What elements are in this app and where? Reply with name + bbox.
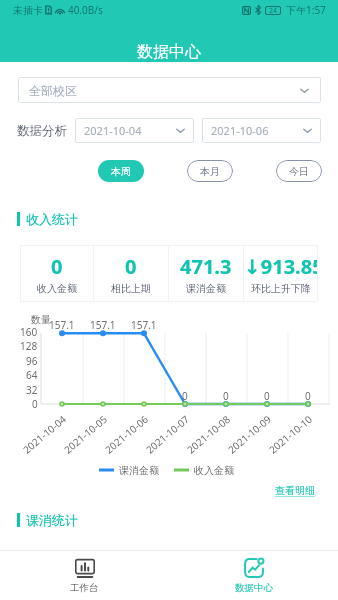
button[interactable]: 本周	[98, 160, 144, 182]
button[interactable]: 0	[94, 245, 168, 302]
button[interactable]: 今日	[276, 160, 322, 182]
staticText: 本月	[200, 165, 220, 178]
button[interactable]: ↓913.85	[244, 245, 318, 302]
staticText: 0	[51, 253, 63, 280]
button[interactable]: 全部校区	[18, 77, 321, 103]
staticText: 相比上期	[111, 282, 151, 295]
button[interactable]: 数据中心	[169, 551, 338, 600]
staticText: 2021-10-06	[211, 123, 269, 138]
staticText: 本周	[111, 165, 131, 178]
button[interactable]: 2021-10-06	[202, 118, 321, 143]
staticText: 收入统计	[26, 211, 78, 227]
staticText: 数据中心	[235, 582, 273, 594]
staticText: 40.0B/s	[68, 3, 103, 17]
staticText: 今日	[289, 165, 309, 178]
staticText: 全部校区	[29, 83, 77, 98]
button[interactable]: 本月	[187, 160, 233, 182]
staticText: 查看明细	[275, 484, 315, 497]
staticText: 下午1:57	[286, 3, 326, 17]
button[interactable]: 471.3	[169, 245, 243, 302]
staticText: 数据中心	[137, 42, 201, 62]
staticText: 24	[269, 6, 278, 15]
button[interactable]: 2021-10-04	[75, 118, 194, 143]
staticText: 收入金额	[37, 282, 77, 295]
staticText: 471.3	[180, 253, 232, 280]
staticText: 未插卡	[13, 4, 43, 17]
button[interactable]: 0	[20, 245, 93, 302]
staticText: 环比上升下降	[251, 282, 311, 295]
staticText: 数据分析	[17, 123, 67, 139]
staticText: 课消统计	[26, 512, 78, 528]
staticText: 2021-10-04	[84, 123, 142, 138]
staticText: 工作台	[70, 582, 99, 594]
staticText: 课消金额	[186, 282, 226, 295]
staticText: ↓913.85	[244, 253, 318, 280]
button[interactable]: 工作台	[0, 551, 169, 600]
button[interactable]: 查看明细	[273, 482, 317, 499]
staticText: 0	[125, 253, 137, 280]
